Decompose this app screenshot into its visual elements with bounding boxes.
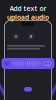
staticText: Add [44,62,50,65]
staticText: upload audio [7,13,49,22]
button[interactable]: Microphone [28,33,34,39]
button[interactable]: Camera [13,33,19,39]
button[interactable]: Record audio [1,58,54,69]
staticText: Add text or [9,4,46,13]
button[interactable] [24,87,32,92]
